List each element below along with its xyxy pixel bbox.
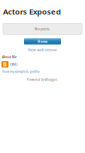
- staticText: DWD: [10, 62, 18, 67]
- staticText: No posts.: [34, 26, 50, 31]
- staticText: B: [3, 60, 7, 68]
- staticText: View web version: [28, 47, 57, 52]
- button[interactable]: View my complete profile: [2, 70, 40, 74]
- staticText: Powered by Blogger.: [27, 78, 58, 82]
- staticText: Home: [37, 39, 47, 44]
- staticText: About Me: [2, 55, 17, 59]
- staticText: View my complete profile: [2, 70, 40, 74]
- button[interactable]: Home: [24, 38, 61, 44]
- staticText: Actors Exposed: [3, 6, 61, 17]
- button[interactable]: View web version: [0, 47, 85, 52]
